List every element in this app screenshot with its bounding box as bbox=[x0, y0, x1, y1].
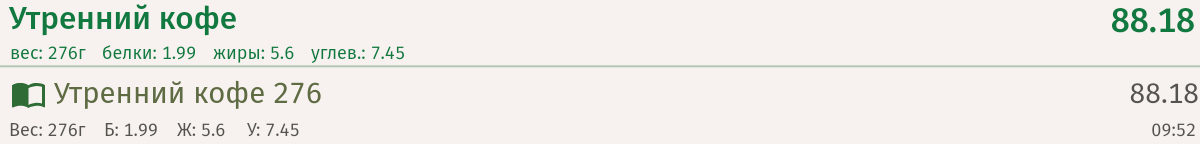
button[interactable]: Open recipe bbox=[0, 67, 1200, 144]
staticText: вес: 276г bbox=[10, 42, 86, 64]
staticText: 88.18 bbox=[0, 0, 1195, 41]
staticText: Вес: 276г bbox=[9, 119, 86, 141]
staticText: Б: 1.99 bbox=[104, 119, 159, 141]
staticText: углев.: 7.45 bbox=[311, 42, 405, 64]
staticText: 88.18 bbox=[0, 77, 1199, 111]
staticText: Утренний кофе bbox=[9, 0, 238, 38]
staticText: Ж: 5.6 bbox=[177, 119, 226, 141]
other: Open recipe bbox=[12, 83, 45, 108]
staticText: У: 7.45 bbox=[247, 119, 300, 141]
staticText: жиры: 5.6 bbox=[213, 42, 295, 64]
staticText: 09:52 bbox=[0, 119, 1196, 141]
staticText: Утренний кофе 276 bbox=[54, 76, 323, 111]
button[interactable]: Утренний кофе bbox=[0, 0, 1200, 65]
staticText: белки: 1.99 bbox=[102, 42, 197, 64]
